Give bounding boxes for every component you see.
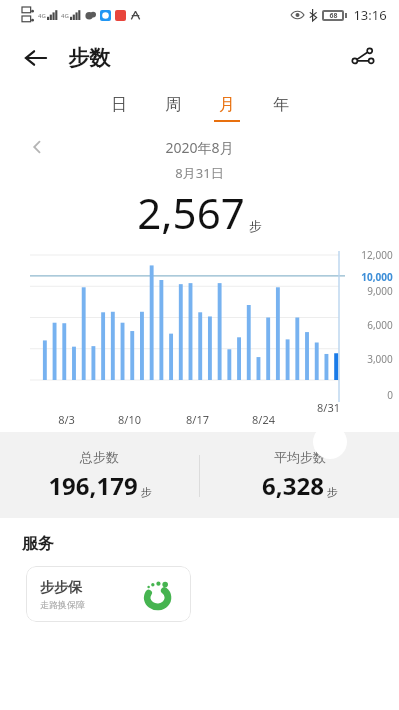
staticText: 12,000	[361, 248, 393, 262]
staticText: 8/31	[317, 400, 340, 415]
staticText: 4G	[61, 12, 69, 20]
staticText: 4G	[38, 12, 46, 20]
button[interactable]: Share	[341, 36, 385, 80]
staticText: 日	[111, 95, 127, 115]
staticText: 8/24	[252, 412, 275, 427]
button[interactable]: 月	[200, 86, 254, 130]
button[interactable]: Previous month	[20, 130, 54, 164]
staticText: 8/17	[186, 412, 209, 427]
staticText: 步	[141, 485, 152, 499]
staticText: 2,567	[137, 184, 245, 241]
staticText: 13:16	[353, 6, 387, 24]
staticText: 步	[249, 218, 262, 234]
staticText: 8/3	[58, 412, 75, 427]
staticText: 196,179	[48, 469, 138, 502]
staticText: 走路换保障	[40, 599, 85, 610]
staticText: 服务	[22, 534, 54, 554]
button[interactable]: 步步保	[26, 566, 191, 622]
button[interactable]: 年	[254, 86, 308, 130]
staticText: 9,000	[367, 284, 393, 298]
staticText: 年	[273, 95, 289, 115]
staticText: 周	[165, 95, 181, 115]
staticText: 8月31日	[175, 164, 224, 182]
staticText: 步	[327, 485, 338, 499]
staticText: 步数	[68, 45, 110, 71]
staticText: 步步保	[40, 579, 82, 597]
staticText: 8/10	[118, 412, 141, 427]
staticText: 6,328	[262, 469, 324, 502]
staticText: 68	[329, 11, 338, 21]
staticText: 总步数	[80, 449, 119, 465]
button[interactable]: 周	[146, 86, 200, 130]
staticText: 10,000	[361, 270, 393, 284]
staticText: 0	[387, 388, 393, 402]
staticText: 3,000	[367, 352, 393, 366]
staticText: 平均步数	[274, 449, 326, 465]
button[interactable]: 日	[92, 86, 146, 130]
staticText: 月	[219, 95, 235, 115]
staticText: 6,000	[367, 318, 393, 332]
button[interactable]: Back	[14, 36, 58, 80]
staticText: 2020年8月	[165, 138, 234, 157]
